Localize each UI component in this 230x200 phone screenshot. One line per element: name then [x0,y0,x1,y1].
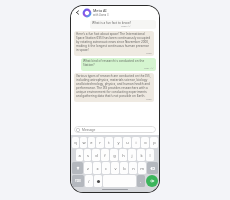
button[interactable]: Symbols [72,175,84,187]
staticText: ?123 [75,179,81,183]
button[interactable]: h [119,149,127,161]
button[interactable]: d [92,149,100,161]
button[interactable]: m [138,162,146,174]
staticText: n [132,166,135,171]
staticText: with Llama 3 [93,13,109,17]
button[interactable]: Key [72,162,83,174]
button[interactable]: b [120,162,128,174]
staticText: . [140,179,142,184]
button[interactable]: r [96,137,104,148]
button[interactable]: Send [146,175,158,187]
staticText: t [108,140,110,145]
button[interactable]: l [146,149,154,161]
button[interactable]: Period [137,175,145,187]
button[interactable]: v [111,162,119,174]
staticText: r [99,140,101,145]
staticText: q [74,140,77,145]
button[interactable]: k [137,149,145,161]
button[interactable]: q [72,137,79,148]
staticText: s [87,153,89,158]
staticText: 10:30 ✓✓ [121,25,131,28]
button[interactable]: w [80,137,87,148]
staticText: j [131,153,133,158]
button[interactable]: p [150,137,158,148]
button[interactable]: a [76,149,83,161]
button[interactable]: e [88,137,95,148]
button[interactable]: Slash [85,175,93,187]
button[interactable]: Back [74,9,81,16]
button[interactable]: Key [147,162,158,174]
button[interactable]: i [132,137,140,148]
button[interactable]: c [102,162,110,174]
staticText: e [90,140,93,145]
staticText: b [123,166,126,171]
button[interactable]: y [114,137,122,148]
staticText: What is a fun fact to know? [92,21,131,25]
staticText: w [82,140,86,145]
button[interactable]: Message [74,126,156,133]
button[interactable]: t [105,137,113,148]
staticText: p [153,140,156,145]
staticText: l [149,153,151,158]
button[interactable]: s [84,149,91,161]
button[interactable]: u [123,137,131,148]
staticText: / [88,179,90,184]
staticText: Meta AI [93,8,107,13]
staticText: a [78,153,81,158]
staticText: z [87,166,89,171]
button[interactable]: What kind of research is conducted on th… [81,58,156,71]
button[interactable]: x [93,162,101,174]
staticText: h [122,153,125,158]
button[interactable]: Various types of research are conducted … [74,73,154,102]
staticText: o [144,140,147,145]
staticText: 10:32 [146,98,152,101]
button[interactable]: z [84,162,92,174]
button[interactable]: What is a fun fact to know? [90,20,156,29]
staticText: d [95,153,98,158]
staticText: c [105,166,107,171]
staticText: m [140,166,144,171]
staticText: x [96,166,99,171]
staticText: g [113,153,116,158]
staticText: i [135,140,137,145]
staticText: Here's a fun fact about space! The Inter… [76,32,152,52]
button[interactable]: o [141,137,149,148]
button[interactable]: n [129,162,137,174]
button[interactable]: Here's a fun fact about space! The Inter… [74,31,154,56]
staticText: Message [82,128,96,132]
staticText: y [117,140,120,145]
staticText: f [104,153,106,158]
staticText: 10:30 [146,52,152,55]
button[interactable]: g [110,149,118,161]
staticText: What kind of research is conducted on th… [83,59,154,67]
staticText: u [126,140,129,145]
staticText: v [114,166,117,171]
staticText: k [140,153,143,158]
staticText: Various types of research are conducted … [76,74,152,98]
button[interactable]: Emoji [94,175,102,187]
button[interactable]: j [128,149,136,161]
button[interactable]: f [101,149,109,161]
staticText: 10:31 ✓✓ [144,67,154,70]
